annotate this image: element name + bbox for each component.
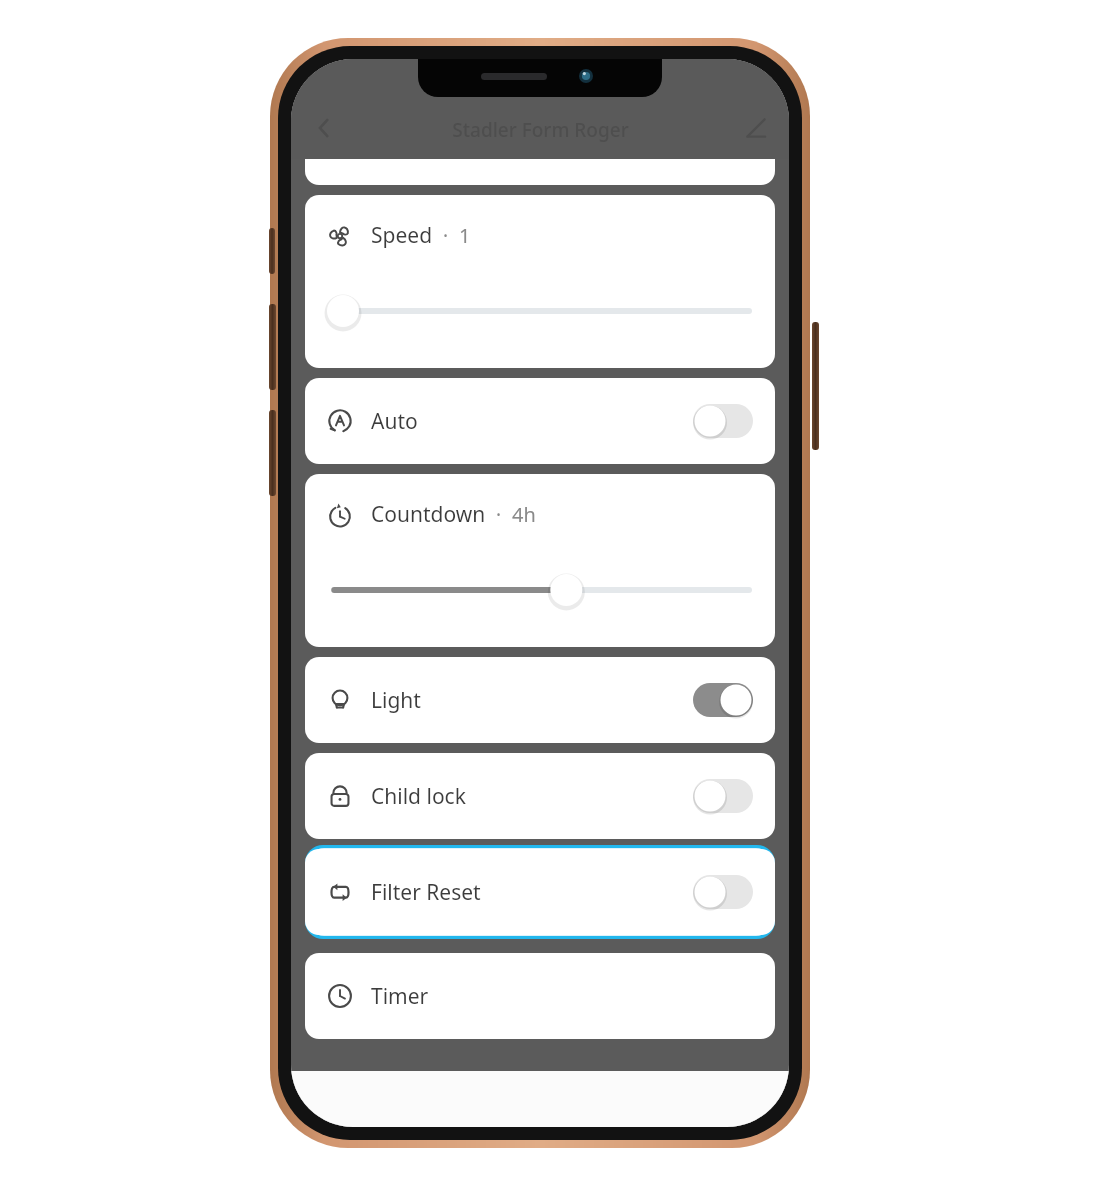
- button[interactable]: Off: [693, 779, 753, 813]
- staticText: 4h: [512, 501, 536, 528]
- staticText: Stadler Form Roger: [452, 117, 629, 143]
- staticText: Light: [371, 686, 421, 715]
- staticText: Speed: [371, 221, 433, 250]
- button[interactable]: Off: [693, 875, 753, 909]
- staticText: Child lock: [371, 782, 466, 811]
- button[interactable]: On: [693, 683, 753, 717]
- button[interactable]: [327, 573, 753, 607]
- button[interactable]: Auto: [305, 378, 775, 464]
- button[interactable]: Speed: [305, 195, 775, 368]
- staticText: Auto: [371, 407, 418, 436]
- staticText: ·: [496, 502, 502, 528]
- button[interactable]: Light: [305, 657, 775, 743]
- button[interactable]: Child lock: [305, 753, 775, 839]
- button[interactable]: Countdown: [305, 474, 775, 647]
- staticText: Filter Reset: [371, 878, 481, 907]
- button[interactable]: [327, 294, 753, 328]
- button[interactable]: [305, 159, 775, 185]
- staticText: ·: [443, 223, 449, 249]
- button[interactable]: Off: [693, 404, 753, 438]
- button[interactable]: Filter Reset: [305, 849, 775, 935]
- button[interactable]: Timer: [305, 953, 775, 1039]
- staticText: Timer: [371, 982, 429, 1011]
- staticText: 1: [459, 222, 471, 249]
- staticText: Countdown: [371, 500, 486, 529]
